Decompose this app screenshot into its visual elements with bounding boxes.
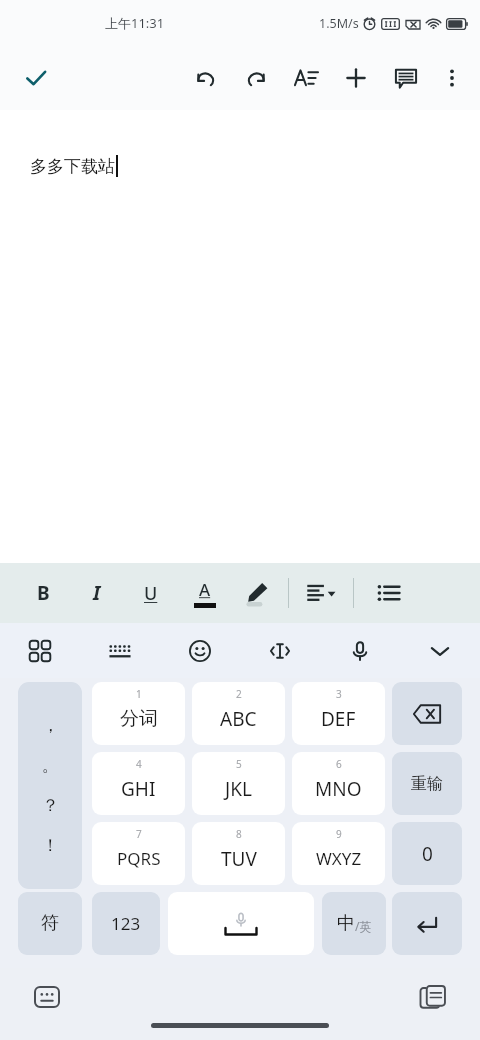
button[interactable]: Backspace bbox=[392, 682, 462, 745]
staticText: 4 bbox=[136, 757, 142, 771]
staticText: 1.5M/s bbox=[319, 15, 359, 32]
button[interactable]: 符 bbox=[18, 892, 82, 955]
button[interactable]: Hide keyboard bbox=[400, 623, 480, 678]
button[interactable]: 7 bbox=[92, 822, 185, 885]
staticText: 8 bbox=[236, 827, 242, 841]
staticText: 9 bbox=[336, 827, 342, 841]
staticText: 6 bbox=[336, 757, 342, 771]
staticText: U bbox=[144, 581, 158, 606]
button[interactable]: Enter bbox=[392, 892, 462, 955]
staticText: 上午11:31 bbox=[105, 14, 165, 32]
staticText: TUV bbox=[221, 846, 257, 872]
button[interactable]: 重输 bbox=[392, 752, 462, 815]
staticText: 5 bbox=[236, 757, 242, 771]
staticText: GHI bbox=[121, 776, 156, 802]
staticText: 123 bbox=[111, 912, 141, 935]
button[interactable]: 2 bbox=[192, 682, 285, 745]
button[interactable]: Keyboard layout bbox=[80, 623, 160, 678]
button[interactable]: Text format bbox=[284, 56, 328, 100]
button[interactable]: Emoji bbox=[160, 623, 240, 678]
button[interactable]: 3 bbox=[292, 682, 385, 745]
button[interactable]: Apps bbox=[0, 623, 80, 678]
staticText: 1 bbox=[136, 687, 142, 701]
button[interactable]: 123 bbox=[92, 892, 160, 955]
button[interactable]: 5 bbox=[192, 752, 285, 815]
staticText: /英 bbox=[355, 918, 372, 934]
staticText: ！ bbox=[42, 835, 59, 856]
staticText: 中 bbox=[337, 912, 355, 935]
button[interactable]: Undo bbox=[184, 56, 228, 100]
staticText: JKL bbox=[225, 776, 252, 802]
staticText: 。 bbox=[42, 755, 59, 776]
staticText: 3 bbox=[336, 687, 342, 701]
staticText: 符 bbox=[41, 912, 59, 935]
button[interactable]: 0 bbox=[392, 822, 462, 885]
button[interactable]: 8 bbox=[192, 822, 285, 885]
button[interactable]: Highlight bbox=[240, 571, 274, 615]
staticText: I bbox=[93, 580, 101, 606]
staticText: 分词 bbox=[120, 707, 158, 731]
button[interactable]: Clipboard bbox=[416, 980, 450, 1014]
button[interactable]: Bold bbox=[26, 571, 60, 615]
staticText: 7 bbox=[136, 827, 142, 841]
staticText: PQRS bbox=[117, 847, 161, 870]
button[interactable]: Space bbox=[168, 892, 314, 955]
button[interactable]: Text color bbox=[188, 571, 222, 615]
button[interactable]: Redo bbox=[234, 56, 278, 100]
staticText: 2 bbox=[236, 687, 242, 701]
staticText: ABC bbox=[220, 706, 257, 732]
button[interactable]: Switch keyboard bbox=[30, 980, 64, 1014]
button[interactable]: Punctuation bbox=[18, 682, 82, 889]
button[interactable]: Underline bbox=[134, 571, 168, 615]
button[interactable]: Alignment bbox=[305, 571, 339, 615]
staticText: DEF bbox=[321, 706, 356, 732]
button[interactable]: 1 bbox=[92, 682, 185, 745]
staticText: 0 bbox=[422, 841, 433, 867]
staticText: WXYZ bbox=[316, 847, 362, 870]
staticText: ？ bbox=[42, 795, 59, 816]
staticText: A bbox=[199, 578, 211, 601]
button[interactable]: 中 bbox=[322, 892, 386, 955]
button[interactable]: 9 bbox=[292, 822, 385, 885]
button[interactable]: Bullet list bbox=[372, 571, 406, 615]
button[interactable]: More options bbox=[430, 56, 474, 100]
button[interactable]: Voice input bbox=[320, 623, 400, 678]
button[interactable]: 6 bbox=[292, 752, 385, 815]
button[interactable]: Italic bbox=[80, 571, 114, 615]
button[interactable]: 4 bbox=[92, 752, 185, 815]
staticText: ， bbox=[42, 715, 59, 736]
button[interactable]: Done bbox=[14, 56, 58, 100]
staticText: 多多下载站 bbox=[30, 156, 115, 177]
staticText: B bbox=[37, 580, 50, 606]
button[interactable]: Insert bbox=[334, 56, 378, 100]
staticText: MNO bbox=[315, 776, 362, 802]
button[interactable]: Comment bbox=[384, 56, 428, 100]
staticText: 重输 bbox=[411, 774, 443, 794]
button[interactable]: Cursor control bbox=[240, 623, 320, 678]
